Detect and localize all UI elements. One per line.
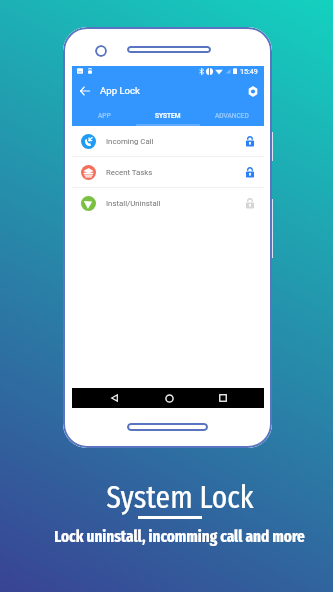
button[interactable]: ADVANCED [200,104,264,126]
button[interactable]: Back [76,82,94,100]
staticText: Recent Tasks [106,168,153,177]
staticText: ADVANCED [215,112,249,120]
staticText: SYSTEM [155,112,181,120]
button[interactable]: Incoming Call [72,126,264,156]
staticText: Incoming Call [106,137,154,146]
staticText: APP [98,112,111,120]
button[interactable]: Recent apps [214,388,232,408]
button[interactable]: Recent Tasks [72,157,264,187]
staticText: System Lock [106,478,254,516]
button[interactable]: APP [72,104,136,126]
staticText: App Lock [100,85,140,96]
button[interactable]: Settings [244,82,262,100]
button[interactable]: Back [105,388,123,408]
staticText: 15:49 [240,67,258,75]
button[interactable]: Home [160,388,178,408]
button[interactable]: Install/Uninstall [72,188,264,218]
staticText: Install/Uninstall [106,199,161,208]
staticText: Lock uninstall, incomming call and more [54,527,305,547]
button[interactable]: SYSTEM [136,104,200,126]
